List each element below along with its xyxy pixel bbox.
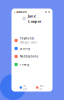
button[interactable] <box>45 11 47 13</box>
button[interactable]: Payments <box>11 36 52 44</box>
button[interactable] <box>48 11 50 13</box>
staticText: Account <box>16 10 27 14</box>
button[interactable]: Security <box>11 44 52 52</box>
staticText: ‹ <box>14 9 15 15</box>
staticText: Manage cards <box>20 41 37 44</box>
button[interactable]: More <box>36 84 44 91</box>
staticText: Security <box>20 47 30 50</box>
button[interactable]: Privacy <box>11 60 52 68</box>
button[interactable]: ‹ <box>14 9 15 15</box>
staticText: Payments <box>20 37 34 40</box>
staticText: Notifications <box>20 55 38 58</box>
button[interactable]: Send <box>19 84 27 91</box>
staticText: Jane Cooper <box>28 13 42 24</box>
button[interactable]: Notifications <box>11 52 52 60</box>
staticText: Send <box>23 84 27 91</box>
staticText: Privacy <box>20 63 29 66</box>
staticText: More <box>39 84 44 91</box>
